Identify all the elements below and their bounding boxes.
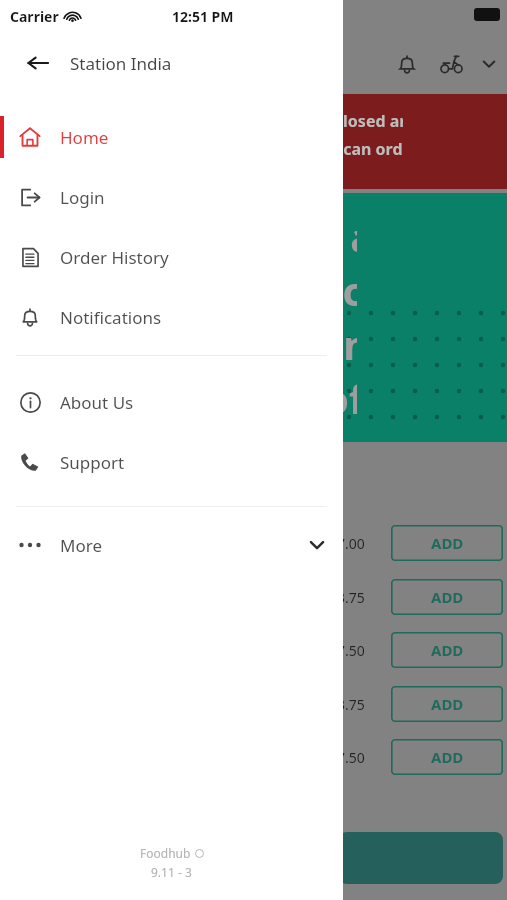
- button[interactable]: ADD: [391, 739, 503, 775]
- staticText: £7.50: [329, 641, 365, 660]
- staticText: About Us: [60, 391, 134, 414]
- staticText: ADD: [431, 747, 464, 767]
- staticText: More: [60, 534, 102, 557]
- staticText: ADD: [431, 694, 464, 714]
- button[interactable]: Delivery: [433, 46, 469, 82]
- button[interactable]: Notifications: [389, 46, 425, 82]
- button[interactable]: About Us: [0, 372, 343, 432]
- staticText: at 17:00. You can order now for: [239, 138, 403, 160]
- button[interactable]: Notifications: [0, 287, 343, 347]
- staticText: Notifications: [60, 306, 162, 329]
- staticText: £7.00: [329, 534, 365, 553]
- staticText: Foodhub: [140, 845, 191, 861]
- button[interactable]: More: [0, 519, 343, 571]
- button[interactable]: ADD: [391, 632, 503, 668]
- button[interactable]: Basket: [339, 832, 503, 884]
- button[interactable]: ADD: [391, 686, 503, 722]
- staticText: £3.75: [329, 588, 365, 607]
- button[interactable]: Expand: [473, 48, 505, 80]
- staticText: ADD: [431, 587, 464, 607]
- staticText: Station India: [70, 52, 172, 75]
- staticText: Order History: [60, 246, 169, 269]
- staticText: £7.50: [329, 748, 365, 767]
- staticText: ADD: [431, 640, 464, 660]
- button[interactable]: Login: [0, 167, 343, 227]
- staticText: £3.75: [329, 695, 365, 714]
- staticText: 12:51 PM: [172, 7, 234, 26]
- button[interactable]: Back: [16, 41, 60, 85]
- staticText: Sign up and get a: [193, 209, 357, 263]
- staticText: 9.11 - 3: [151, 864, 192, 880]
- staticText: Support: [60, 451, 125, 474]
- staticText: on minimum: [193, 317, 357, 371]
- staticText: Login: [60, 186, 105, 209]
- staticText: 10% discount: [193, 263, 357, 317]
- button[interactable]: ADD: [391, 579, 503, 615]
- button[interactable]: ADD: [391, 525, 503, 561]
- staticText: Home: [60, 126, 109, 149]
- button[interactable]: Order History: [0, 227, 343, 287]
- staticText: spend of 15 pounds.: [193, 371, 357, 425]
- button[interactable]: Support: [0, 432, 343, 492]
- staticText: ADD: [431, 533, 464, 553]
- button[interactable]: Home: [0, 107, 343, 167]
- staticText: Carrier: [10, 7, 59, 26]
- staticText: The store is closed and will open: [239, 110, 403, 132]
